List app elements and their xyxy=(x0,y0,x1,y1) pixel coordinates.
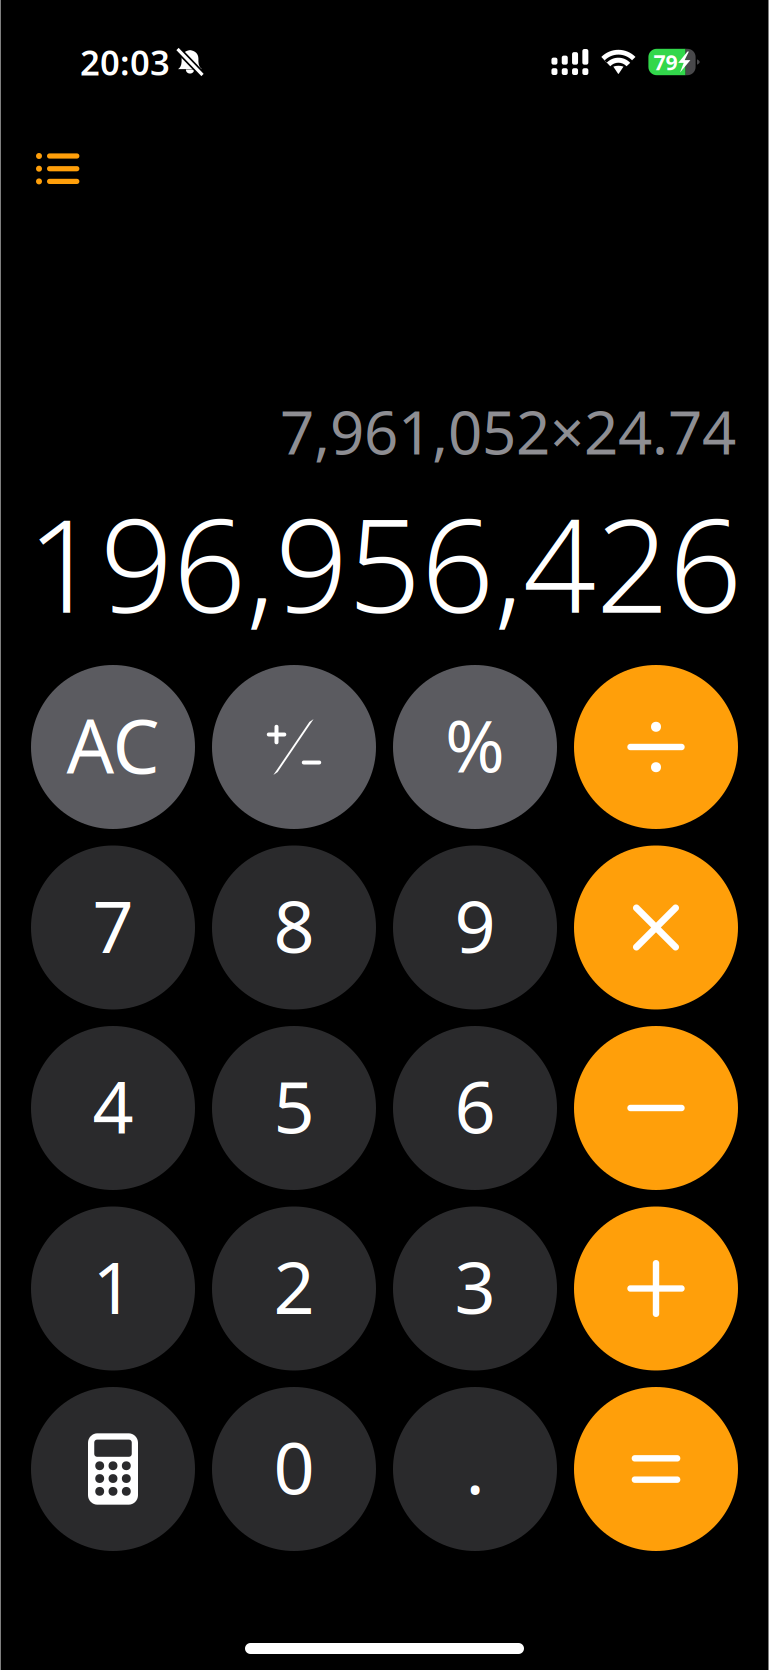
button[interactable]: 9 xyxy=(393,845,557,1009)
button[interactable]: 8 xyxy=(212,845,376,1009)
staticText: 8 xyxy=(273,877,314,973)
button[interactable]: Multiply xyxy=(574,845,738,1009)
staticText: AC xyxy=(66,695,159,794)
staticText: 2 xyxy=(273,1238,314,1334)
button[interactable]: Subtract xyxy=(574,1026,738,1190)
button[interactable]: 4 xyxy=(31,1026,195,1190)
button[interactable]: % xyxy=(393,665,557,829)
button[interactable]: 7 xyxy=(31,845,195,1009)
staticText: 196,956,426 xyxy=(27,478,742,648)
staticText: 79 xyxy=(653,48,677,76)
button[interactable]: Divide xyxy=(574,665,738,829)
staticText: 20:03 xyxy=(80,39,170,85)
staticText: 3 xyxy=(454,1238,495,1334)
button[interactable]: 2 xyxy=(212,1206,376,1370)
staticText: 6 xyxy=(454,1058,495,1153)
staticText: 1 xyxy=(92,1238,133,1334)
button[interactable]: . xyxy=(393,1387,557,1551)
staticText: % xyxy=(445,697,505,792)
staticText: 4 xyxy=(92,1058,133,1153)
button[interactable]: History xyxy=(22,139,93,198)
button[interactable]: 0 xyxy=(212,1387,376,1551)
staticText: . xyxy=(465,1419,484,1514)
staticText: 5 xyxy=(273,1058,314,1153)
button[interactable]: Add xyxy=(574,1206,738,1370)
button[interactable]: 1 xyxy=(31,1206,195,1370)
button[interactable]: 6 xyxy=(393,1026,557,1190)
button[interactable]: Equals xyxy=(574,1387,738,1551)
button[interactable]: Calculator Modes xyxy=(31,1387,195,1551)
staticText: 0 xyxy=(273,1419,314,1514)
staticText: 7 xyxy=(92,877,133,973)
button[interactable]: 3 xyxy=(393,1206,557,1370)
button[interactable]: 5 xyxy=(212,1026,376,1190)
staticText: 9 xyxy=(454,877,495,973)
staticText: 7,961,052×24.74 xyxy=(280,391,736,471)
button[interactable]: AC xyxy=(31,665,195,829)
button[interactable]: Plus Minus xyxy=(212,665,376,829)
